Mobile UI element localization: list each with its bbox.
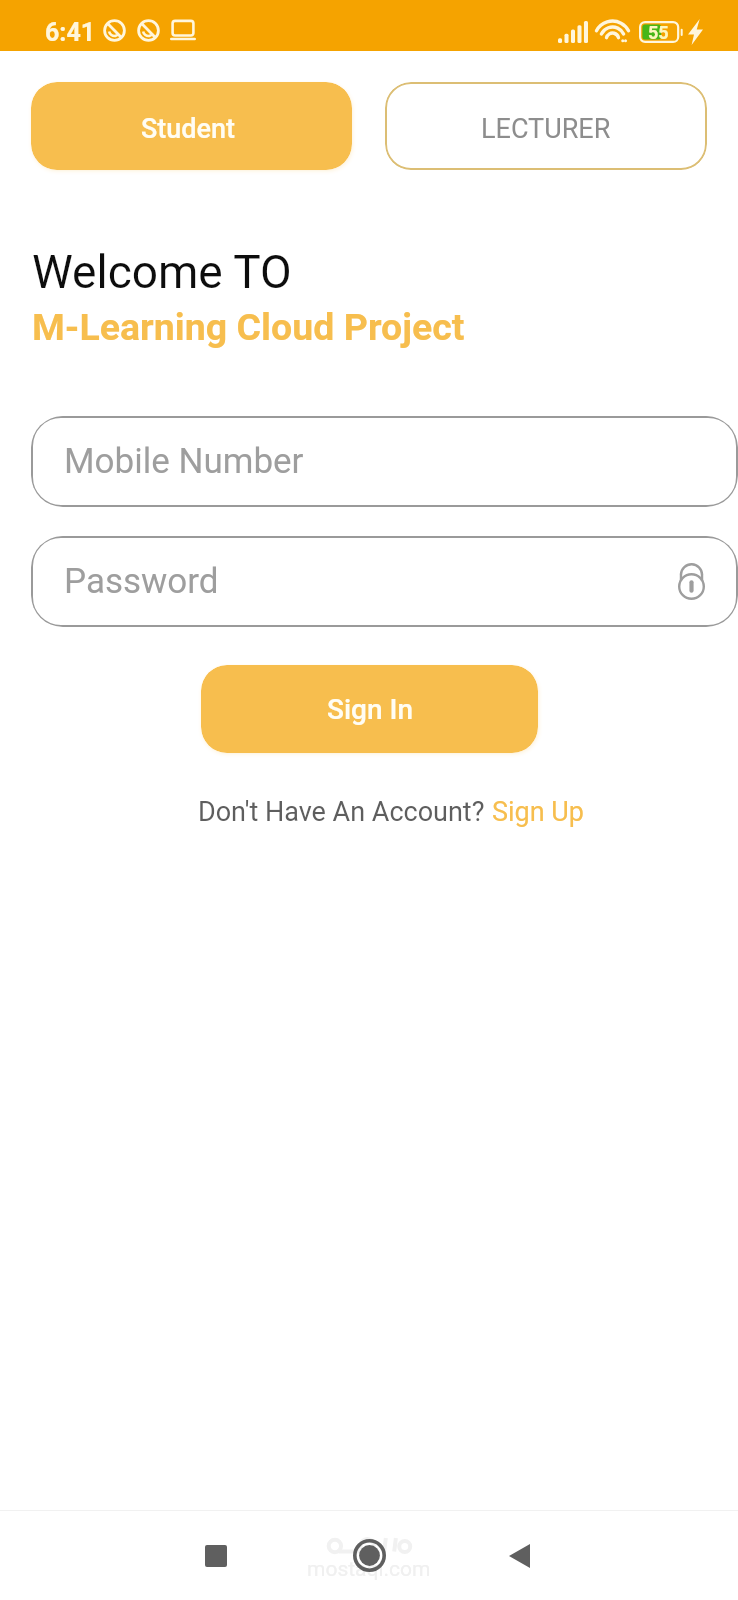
button[interactable]: Sign Up xyxy=(492,796,585,828)
button[interactable]: Sign In xyxy=(201,665,538,753)
staticText: Student xyxy=(141,113,236,145)
button[interactable]: Password xyxy=(31,536,738,627)
button[interactable]: Back xyxy=(509,1544,530,1568)
staticText: LECTURER xyxy=(481,113,611,145)
staticText: Sign In xyxy=(327,693,413,726)
button[interactable]: Home xyxy=(353,1539,386,1572)
staticText: 6:41 xyxy=(45,18,96,47)
staticText: Password xyxy=(64,561,219,602)
staticText: Sign Up xyxy=(492,796,585,828)
staticText: Mobile Number xyxy=(64,441,304,482)
button[interactable]: Mobile Number xyxy=(31,416,738,507)
staticText: M-Learning Cloud Project xyxy=(32,305,465,349)
staticText: mostaql.com xyxy=(307,1557,431,1582)
staticText: Welcome TO xyxy=(32,245,292,299)
button[interactable]: LECTURER xyxy=(385,82,707,170)
button[interactable]: Student xyxy=(31,82,352,170)
button[interactable]: Recent apps xyxy=(205,1545,227,1567)
staticText: 55 xyxy=(648,22,669,43)
staticText: Don't Have An Account? xyxy=(198,796,492,828)
